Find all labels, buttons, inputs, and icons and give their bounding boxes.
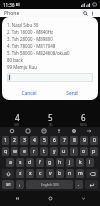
button[interactable]: 5 xyxy=(34,111,67,127)
staticText: 7 xyxy=(63,137,66,144)
button[interactable]: Clipboard xyxy=(36,127,51,135)
staticText: 2 xyxy=(13,137,16,144)
button[interactable]: p xyxy=(90,147,98,156)
staticText: y xyxy=(53,148,56,155)
button[interactable]: q xyxy=(2,147,9,156)
button[interactable]: 1 xyxy=(2,136,9,145)
staticText: GHI xyxy=(14,123,20,127)
button[interactable]: a xyxy=(6,158,14,167)
button[interactable]: 0 xyxy=(90,136,98,145)
staticText: 5. Tsh 58000 - M824608/okua0 xyxy=(7,50,70,56)
staticText: 2. Tsh 18000 - M840Hz xyxy=(7,29,54,35)
staticText: 8 xyxy=(73,137,76,144)
button[interactable]: Settings xyxy=(66,127,81,135)
button[interactable]: i xyxy=(70,147,78,156)
button[interactable]: b xyxy=(56,169,64,178)
staticText: z xyxy=(19,170,22,177)
button[interactable]: English (US) xyxy=(26,180,73,189)
staticText: . xyxy=(78,181,80,188)
button[interactable]: Enter xyxy=(85,180,98,189)
button[interactable]: k xyxy=(76,158,84,167)
button[interactable]: h xyxy=(56,158,64,167)
staticText: o xyxy=(82,148,86,155)
button[interactable]: j xyxy=(66,158,74,167)
button[interactable]: w xyxy=(11,147,18,156)
staticText: 4 xyxy=(15,112,20,123)
staticText: MNO xyxy=(80,123,87,127)
staticText: s xyxy=(19,159,22,166)
button[interactable]: v xyxy=(46,169,54,178)
button[interactable]: Emoji xyxy=(4,127,20,135)
button[interactable]: d xyxy=(26,158,34,167)
button[interactable]: e xyxy=(20,147,28,156)
button[interactable]: Recents xyxy=(0,191,34,206)
button[interactable]: Home xyxy=(34,191,67,206)
button[interactable]: x xyxy=(26,169,34,178)
staticText: 5 xyxy=(48,112,53,123)
staticText: 11:36 xyxy=(3,2,15,8)
staticText: u xyxy=(62,148,66,155)
button[interactable]: n xyxy=(66,169,74,178)
button[interactable]: Back xyxy=(67,191,100,206)
button[interactable] xyxy=(7,73,93,82)
button[interactable]: y xyxy=(50,147,58,156)
button[interactable]: l xyxy=(86,158,94,167)
button[interactable]: z xyxy=(16,169,24,178)
staticText: p xyxy=(92,148,96,155)
staticText: JKL xyxy=(49,123,53,127)
staticText: t xyxy=(43,148,45,155)
staticText: 1. Nasıl Sıbu 30 xyxy=(7,22,39,28)
staticText: g xyxy=(48,159,52,166)
button[interactable]: , xyxy=(16,180,24,189)
staticText: Phone xyxy=(4,10,20,17)
button[interactable]: Cancel xyxy=(7,88,50,98)
staticText: l xyxy=(89,159,91,166)
button[interactable]: 2 xyxy=(11,136,18,145)
button[interactable]: t xyxy=(40,147,48,156)
button[interactable]: Sticker xyxy=(20,127,36,135)
staticText: k xyxy=(79,159,82,166)
staticText: Cancel xyxy=(21,90,37,97)
button[interactable]: c xyxy=(36,169,44,178)
button[interactable]: m xyxy=(76,169,84,178)
button[interactable]: u xyxy=(60,147,68,156)
staticText: 80 back xyxy=(7,57,23,63)
button[interactable]: s xyxy=(16,158,24,167)
button[interactable]: Expand toolbar xyxy=(81,127,96,135)
staticText: x xyxy=(29,170,32,177)
button[interactable]: Shift xyxy=(2,169,14,178)
staticText: 5 xyxy=(43,137,46,144)
button[interactable]: Send xyxy=(50,88,93,98)
staticText: English (US) xyxy=(41,183,59,187)
button[interactable]: 3 xyxy=(20,136,28,145)
staticText: 9 xyxy=(83,137,86,144)
staticText: n xyxy=(68,170,72,177)
button[interactable]: !#1 xyxy=(2,180,14,189)
button[interactable]: r xyxy=(30,147,38,156)
button[interactable]: Voice input xyxy=(51,127,66,135)
staticText: Send xyxy=(66,90,78,97)
staticText: b xyxy=(58,170,62,177)
button[interactable]: . xyxy=(75,180,83,189)
button[interactable]: f xyxy=(36,158,44,167)
button[interactable]: 4 xyxy=(0,111,34,127)
button[interactable]: Search xyxy=(82,10,89,17)
button[interactable]: 5 xyxy=(40,136,48,145)
button[interactable]: More options xyxy=(89,10,96,17)
button[interactable]: 6 xyxy=(67,111,100,127)
staticText: 99 Memju Kuu xyxy=(7,64,37,70)
button[interactable]: Backspace xyxy=(86,169,98,178)
staticText: d xyxy=(28,159,32,166)
staticText: a xyxy=(9,159,12,166)
button[interactable]: 7 xyxy=(60,136,68,145)
button[interactable]: o xyxy=(80,147,88,156)
staticText: , xyxy=(19,181,21,188)
button[interactable]: 4 xyxy=(30,136,38,145)
button[interactable]: 6 xyxy=(50,136,58,145)
button[interactable]: 9 xyxy=(80,136,88,145)
staticText: 6 xyxy=(81,112,86,123)
button[interactable]: 8 xyxy=(70,136,78,145)
staticText: c xyxy=(39,170,42,177)
button[interactable]: g xyxy=(46,158,54,167)
staticText: h xyxy=(58,159,62,166)
